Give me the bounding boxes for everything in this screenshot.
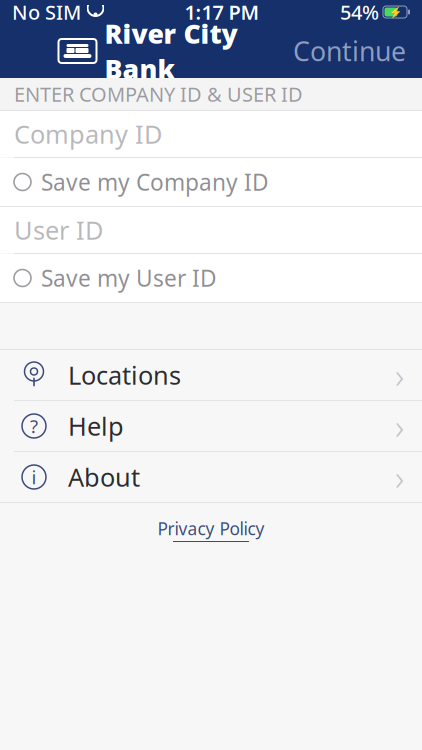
staticText: 54% [340,0,379,25]
staticText: › [395,454,404,500]
staticText: User ID [14,213,103,247]
staticText: Save my Company ID [41,167,269,197]
button[interactable]: i [0,452,422,502]
staticText: Privacy Policy [157,517,264,540]
button[interactable]: Company ID [0,111,422,157]
button[interactable]: ? [0,401,422,451]
button[interactable]: User ID [0,207,422,253]
staticText: River City Bank [104,16,237,86]
staticText: › [395,352,404,398]
staticText: About [68,460,140,494]
button[interactable]: Privacy Policy [143,503,278,552]
button[interactable]: Save my Company ID [0,158,422,206]
staticText: Continue [293,33,406,69]
staticText: › [395,403,404,449]
staticText: Locations [68,358,181,392]
staticText: Help [68,409,124,443]
button[interactable]: Continue [283,25,416,77]
staticText: ? [30,414,38,438]
staticText: i [31,465,36,489]
staticText: Save my User ID [41,263,217,293]
staticText: ENTER COMPANY ID & USER ID [14,81,303,107]
button[interactable]: Save my User ID [0,254,422,302]
staticText: No SIM [12,0,81,25]
button[interactable]: Locations [0,350,422,400]
staticText: 1:17 PM [184,0,259,25]
staticText: ⚡ [388,6,401,18]
staticText: Company ID [14,117,162,151]
